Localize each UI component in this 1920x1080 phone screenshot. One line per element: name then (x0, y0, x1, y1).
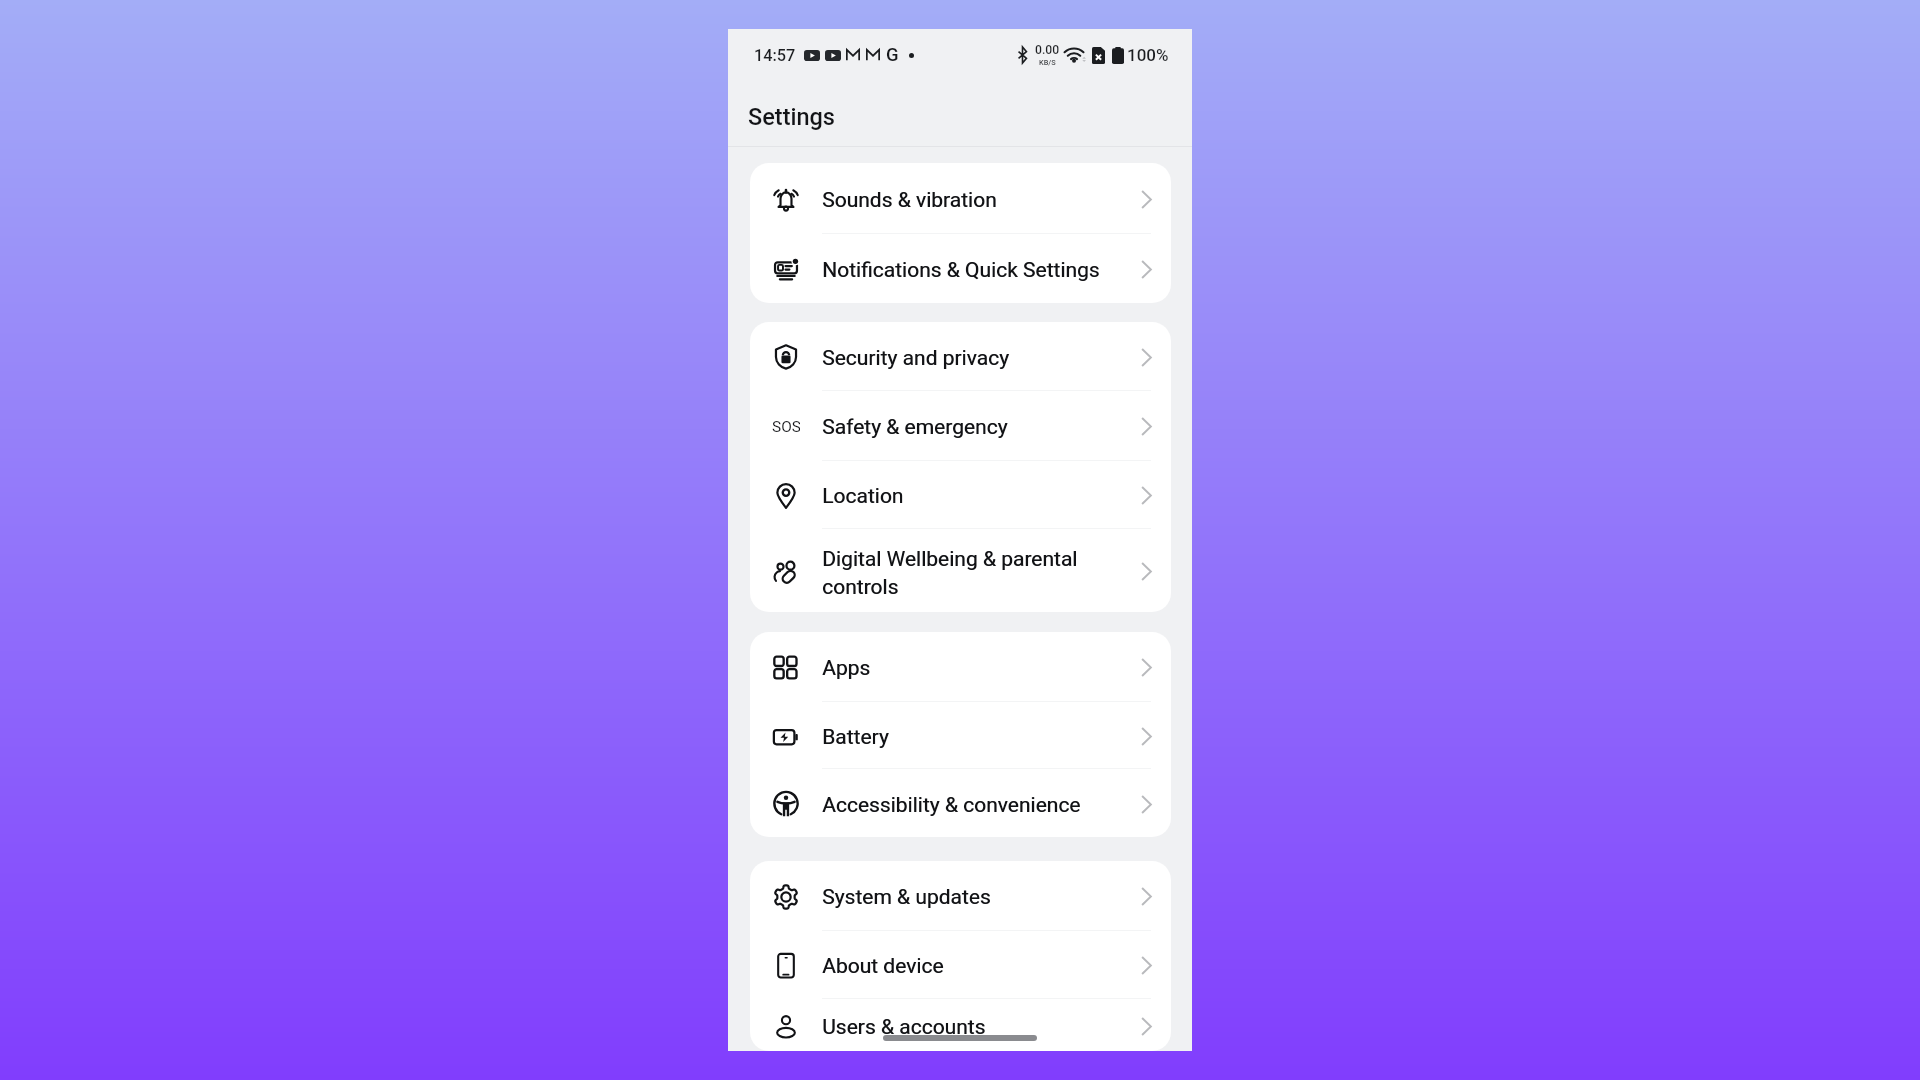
staticText: SOS (772, 418, 800, 436)
staticText: Accessibility & convenience (822, 793, 1081, 818)
staticText: 14:57 (754, 46, 796, 65)
staticText: 100% (1127, 45, 1169, 65)
staticText: Digital Wellbeing & parental controls (822, 547, 1111, 599)
button[interactable]: Sounds & vibration (750, 163, 1171, 233)
button[interactable]: Users & accounts (750, 999, 1171, 1051)
staticText: Security and privacy (822, 346, 1009, 371)
staticText: About device (822, 954, 944, 979)
staticText: Sounds & vibration (822, 188, 997, 213)
staticText: Location (822, 484, 904, 509)
button[interactable]: Location (750, 461, 1171, 528)
staticText: System & updates (822, 885, 991, 910)
button[interactable]: System & updates (750, 861, 1171, 930)
staticText: KB/S (1039, 58, 1056, 67)
button[interactable]: About device (750, 931, 1171, 998)
button[interactable]: Apps (750, 632, 1171, 701)
staticText: G (886, 44, 899, 66)
staticText: Location (822, 484, 904, 509)
staticText: Digital Wellbeing & parental controls (822, 547, 1111, 599)
staticText: Sounds & vibration (822, 188, 997, 213)
staticText: Accessibility & convenience (822, 793, 1081, 818)
staticText: Safety & emergency (822, 415, 1008, 440)
staticText: Security and privacy (822, 346, 1009, 371)
staticText: Apps (822, 656, 871, 681)
staticText: Notifications & Quick Settings (822, 258, 1100, 283)
button[interactable]: Digital Wellbeing & parental controls (750, 529, 1171, 612)
staticText: Apps (822, 656, 871, 681)
button[interactable]: Battery (750, 702, 1171, 768)
staticText: Settings (748, 103, 836, 131)
staticText: Users & accounts (822, 1015, 986, 1040)
staticText: Users & accounts (822, 1015, 986, 1040)
staticText: Notifications & Quick Settings (822, 258, 1100, 283)
button[interactable]: Accessibility & convenience (750, 769, 1171, 837)
button[interactable]: Security and privacy (750, 322, 1171, 390)
staticText: Battery (822, 725, 889, 750)
button[interactable]: Notifications & Quick Settings (750, 234, 1171, 303)
staticText: 0.00 (1035, 43, 1060, 57)
button[interactable]: SOS (750, 391, 1171, 460)
staticText: Safety & emergency (822, 415, 1008, 440)
staticText: Battery (822, 725, 889, 750)
staticText: About device (822, 954, 944, 979)
staticText: System & updates (822, 885, 991, 910)
